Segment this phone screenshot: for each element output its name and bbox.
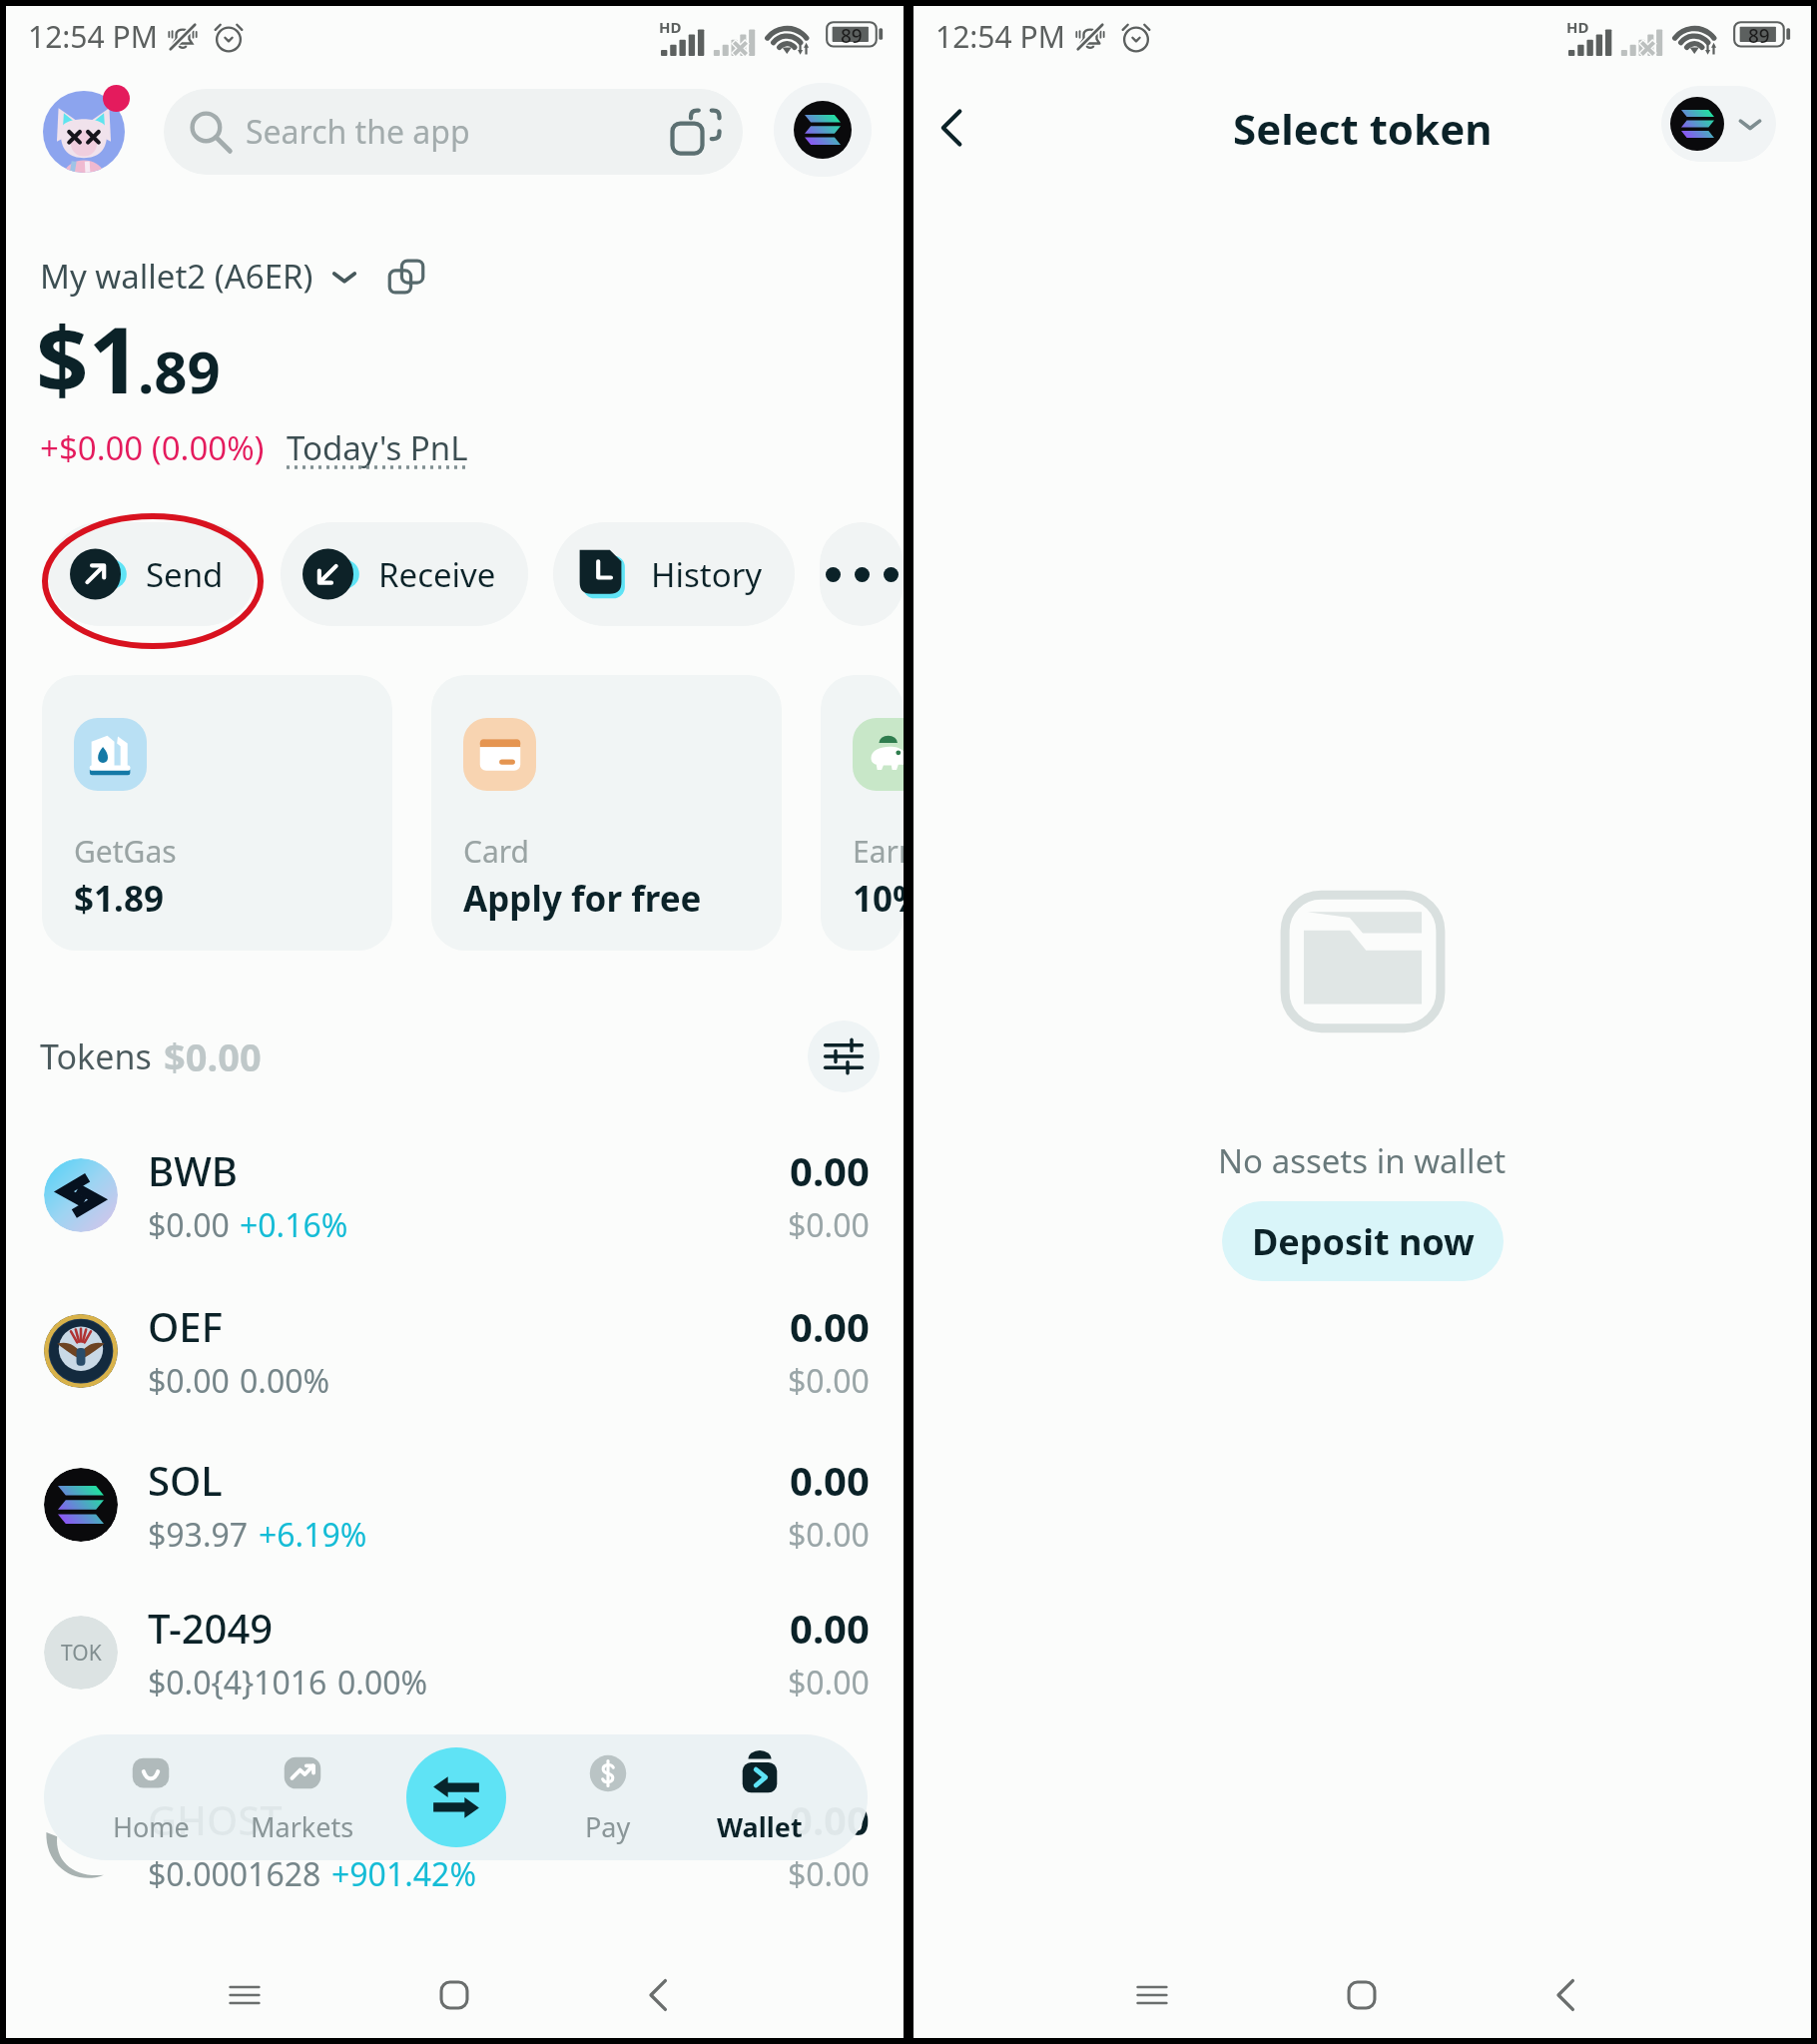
button[interactable]: Scan QR code <box>671 107 721 157</box>
staticText: Pay <box>585 1808 631 1845</box>
staticText: T-2049 <box>148 1601 274 1655</box>
staticText: Earn <box>853 831 904 872</box>
staticText: $0.00 <box>788 1852 870 1896</box>
button[interactable]: Markets <box>245 1734 360 1860</box>
staticText: Apply for free <box>463 875 702 923</box>
button[interactable]: Back <box>914 90 990 166</box>
button[interactable]: Back <box>1521 1950 1611 2040</box>
staticText: 12:54 PM <box>935 16 1065 57</box>
button[interactable]: Today's PnL <box>287 425 468 470</box>
staticText: 10% <box>853 875 904 923</box>
button[interactable]: GHOST <box>6 1767 904 1921</box>
staticText: Receive <box>378 552 496 597</box>
staticText: Search the app <box>246 110 470 154</box>
staticText: 0.00 <box>790 1143 870 1197</box>
staticText: HD <box>1566 17 1589 37</box>
staticText: Wallet <box>717 1808 803 1845</box>
button[interactable]: Back <box>614 1950 704 2040</box>
button[interactable]: Receive <box>281 522 528 626</box>
staticText: .89 <box>138 332 221 410</box>
staticText: $0.00 <box>788 1359 870 1403</box>
button[interactable]: Wallet <box>702 1734 818 1860</box>
staticText: Markets <box>251 1808 354 1845</box>
staticText: $1.89 <box>74 875 164 923</box>
staticText: +901.42% <box>331 1852 476 1896</box>
button[interactable]: More <box>820 522 904 626</box>
staticText: SOL <box>148 1453 223 1507</box>
staticText: $1 <box>36 296 142 420</box>
button[interactable]: SOL <box>6 1428 904 1582</box>
staticText: 0.00 <box>790 1792 870 1846</box>
staticText: +0.16% <box>240 1203 348 1247</box>
button[interactable]: Search the app <box>164 89 743 175</box>
button[interactable]: Deposit now <box>1222 1201 1504 1281</box>
button[interactable]: Copy address <box>387 258 425 296</box>
button[interactable]: BWB <box>6 1118 904 1272</box>
button[interactable]: History <box>553 522 795 626</box>
staticText: $0.00 <box>148 1203 230 1247</box>
staticText: Send <box>146 552 224 597</box>
button[interactable]: Home <box>1317 1950 1407 2040</box>
staticText: Deposit now <box>1252 1217 1475 1266</box>
staticText: Card <box>463 831 530 872</box>
button[interactable]: Network <box>1661 86 1776 162</box>
button[interactable]: Home <box>409 1950 499 2040</box>
staticText: Tokens <box>40 1033 152 1079</box>
staticText: No assets in wallet <box>1218 1138 1507 1183</box>
staticText: TOK <box>61 1639 102 1668</box>
button[interactable]: Filter <box>808 1021 880 1092</box>
staticText: 0.00 <box>790 1453 870 1507</box>
staticText: 0.00 <box>790 1601 870 1655</box>
staticText: History <box>651 552 763 597</box>
staticText: Today's PnL <box>287 425 468 470</box>
staticText: My wallet2 (A6ER) <box>40 254 313 299</box>
staticText: $93.97 <box>148 1513 249 1557</box>
staticText: OEF <box>148 1299 223 1353</box>
staticText: 12:54 PM <box>28 16 158 57</box>
staticText: GetGas <box>74 831 177 872</box>
button[interactable]: Network <box>774 83 872 177</box>
staticText: $0.00 <box>164 1030 262 1082</box>
staticText: $0.0001628 <box>148 1852 321 1896</box>
button[interactable]: Home <box>93 1734 209 1860</box>
button[interactable]: Recents <box>200 1950 290 2040</box>
button[interactable]: My wallet2 (A6ER) <box>40 254 361 299</box>
staticText: $0.0{4}1016 <box>148 1661 327 1704</box>
staticText: +$0.00 (0.00%) <box>40 425 265 470</box>
button[interactable]: Profile <box>37 85 131 179</box>
staticText: 0.00 <box>790 1299 870 1353</box>
staticText: $0.00 <box>788 1513 870 1557</box>
staticText: +6.19% <box>259 1513 367 1557</box>
staticText: Select token <box>1233 100 1493 157</box>
button[interactable]: Recents <box>1107 1950 1197 2040</box>
staticText: 89 <box>1748 23 1770 49</box>
staticText: 0.00% <box>240 1359 330 1403</box>
button[interactable]: OEF <box>6 1274 904 1428</box>
button[interactable]: Earn <box>821 675 904 951</box>
staticText: BWB <box>148 1143 238 1197</box>
staticText: GHOST <box>148 1792 283 1846</box>
staticText: 0.00% <box>337 1661 428 1704</box>
button[interactable]: GetGas <box>42 675 392 951</box>
button[interactable]: Swap <box>406 1747 506 1847</box>
button[interactable]: Send <box>48 522 256 626</box>
button[interactable]: TOK <box>6 1576 904 1729</box>
staticText: $0.00 <box>148 1359 230 1403</box>
staticText: Home <box>113 1808 190 1845</box>
staticText: HD <box>659 17 682 37</box>
staticText: $0.00 <box>788 1203 870 1247</box>
button[interactable]: Pay <box>550 1734 666 1860</box>
staticText: $0.00 <box>788 1661 870 1704</box>
staticText: 89 <box>841 23 863 49</box>
button[interactable]: Card <box>431 675 782 951</box>
